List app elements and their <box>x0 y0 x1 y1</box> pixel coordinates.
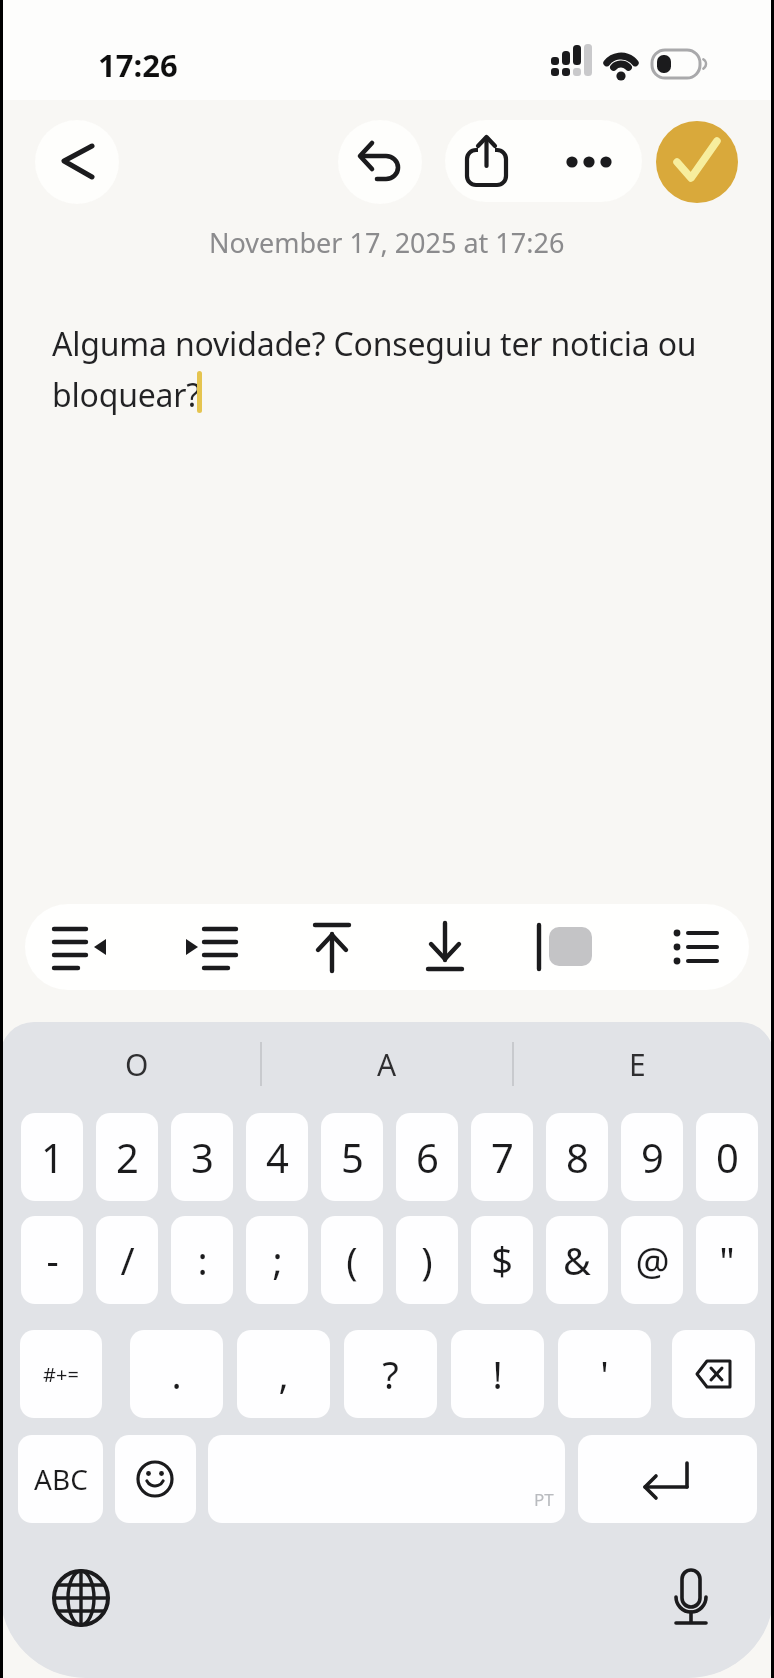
staticText: ABC <box>34 1460 88 1498</box>
staticText: #+= <box>43 1361 79 1388</box>
button[interactable]: 3 <box>171 1113 233 1201</box>
staticText: & <box>563 1234 591 1286</box>
button[interactable]: @ <box>621 1216 683 1304</box>
staticText: 2 <box>116 1130 139 1184</box>
button[interactable]: ( <box>321 1216 383 1304</box>
staticText: E <box>629 1044 646 1085</box>
staticText: ; <box>272 1234 283 1286</box>
staticText: : <box>197 1234 208 1286</box>
button[interactable]: #+= <box>20 1330 102 1418</box>
staticText: 0 <box>716 1130 739 1184</box>
staticText: " <box>719 1234 735 1286</box>
button[interactable]: ; <box>246 1216 308 1304</box>
button[interactable] <box>35 120 119 204</box>
button[interactable] <box>445 120 543 202</box>
button[interactable] <box>338 120 422 204</box>
staticText: $ <box>491 1234 513 1286</box>
button[interactable]: - <box>21 1216 83 1304</box>
button[interactable] <box>644 904 748 990</box>
button[interactable] <box>280 904 384 990</box>
button[interactable]: / <box>96 1216 158 1304</box>
staticText: 5 <box>341 1130 364 1184</box>
button[interactable]: ? <box>344 1330 437 1418</box>
button[interactable]: $ <box>471 1216 533 1304</box>
staticText: 7 <box>491 1130 514 1184</box>
staticText: - <box>46 1234 59 1286</box>
staticText: O <box>125 1044 149 1085</box>
button[interactable] <box>115 1435 196 1523</box>
staticText: , <box>278 1348 289 1400</box>
button[interactable] <box>656 121 738 203</box>
button[interactable]: E <box>557 1040 717 1088</box>
button[interactable]: ) <box>396 1216 458 1304</box>
button[interactable]: 1 <box>21 1113 83 1201</box>
button[interactable] <box>514 904 618 990</box>
staticText: 8 <box>566 1130 589 1184</box>
button[interactable] <box>28 904 132 990</box>
button[interactable] <box>208 1435 565 1523</box>
button[interactable]: 2 <box>96 1113 158 1201</box>
staticText: ! <box>492 1348 503 1400</box>
button[interactable]: 4 <box>246 1113 308 1201</box>
button[interactable]: " <box>696 1216 758 1304</box>
button[interactable]: A <box>307 1040 467 1088</box>
staticText: Alguma novidade? Conseguiu ter noticia o… <box>52 322 697 416</box>
staticText: PT <box>534 1488 554 1511</box>
button[interactable]: 5 <box>321 1113 383 1201</box>
staticText: @ <box>635 1234 670 1286</box>
button[interactable] <box>672 1330 755 1418</box>
staticText: 3 <box>191 1130 214 1184</box>
button[interactable] <box>578 1435 757 1523</box>
button[interactable]: ' <box>558 1330 651 1418</box>
button[interactable] <box>159 904 263 990</box>
button[interactable] <box>393 904 497 990</box>
button[interactable]: 0 <box>696 1113 758 1201</box>
button[interactable]: , <box>237 1330 330 1418</box>
button[interactable]: ABC <box>18 1435 103 1523</box>
button[interactable]: O <box>57 1040 217 1088</box>
staticText: 1 <box>41 1130 64 1184</box>
staticText: . <box>171 1348 182 1400</box>
button[interactable] <box>650 1558 734 1642</box>
button[interactable]: ! <box>451 1330 544 1418</box>
button[interactable]: 9 <box>621 1113 683 1201</box>
staticText: 4 <box>266 1130 289 1184</box>
staticText: ' <box>600 1348 609 1400</box>
staticText: 17:26 <box>98 44 178 86</box>
staticText: 6 <box>416 1130 439 1184</box>
button[interactable]: : <box>171 1216 233 1304</box>
button[interactable]: & <box>546 1216 608 1304</box>
staticText: ) <box>421 1234 433 1286</box>
button[interactable]: 7 <box>471 1113 533 1201</box>
button[interactable]: . <box>130 1330 223 1418</box>
staticText: / <box>120 1234 135 1286</box>
button[interactable]: 8 <box>546 1113 608 1201</box>
button[interactable]: 6 <box>396 1113 458 1201</box>
staticText: A <box>377 1044 397 1085</box>
button[interactable] <box>40 1558 124 1642</box>
staticText: November 17, 2025 at 17:26 <box>209 224 565 261</box>
button[interactable] <box>40 300 734 440</box>
staticText: 9 <box>641 1130 664 1184</box>
staticText: ? <box>382 1348 399 1400</box>
button[interactable] <box>543 120 642 202</box>
staticText: ( <box>346 1234 358 1286</box>
